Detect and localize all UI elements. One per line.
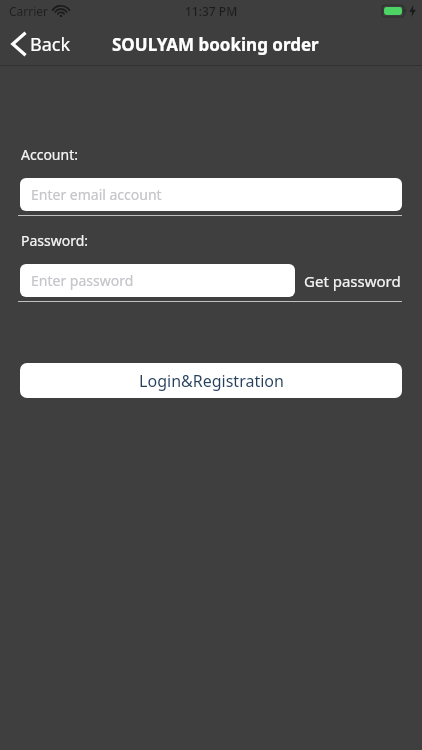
button[interactable]: Enter password: [20, 264, 295, 297]
staticText: Login&Registration: [139, 370, 284, 392]
staticText: SOULYAM booking order: [112, 33, 319, 56]
staticText: Enter password: [31, 271, 134, 290]
staticText: Account:: [21, 145, 78, 164]
button[interactable]: Login&Registration: [20, 363, 402, 398]
staticText: Back: [30, 32, 71, 57]
staticText: Carrier: [9, 3, 49, 19]
staticText: Password:: [21, 231, 89, 250]
button[interactable]: Get password: [295, 264, 401, 297]
staticText: Get password: [304, 271, 401, 291]
staticText: 11:37 PM: [185, 3, 238, 19]
staticText: Enter email account: [31, 185, 162, 204]
button[interactable]: Back: [0, 22, 81, 66]
button[interactable]: Enter email account: [20, 178, 402, 211]
